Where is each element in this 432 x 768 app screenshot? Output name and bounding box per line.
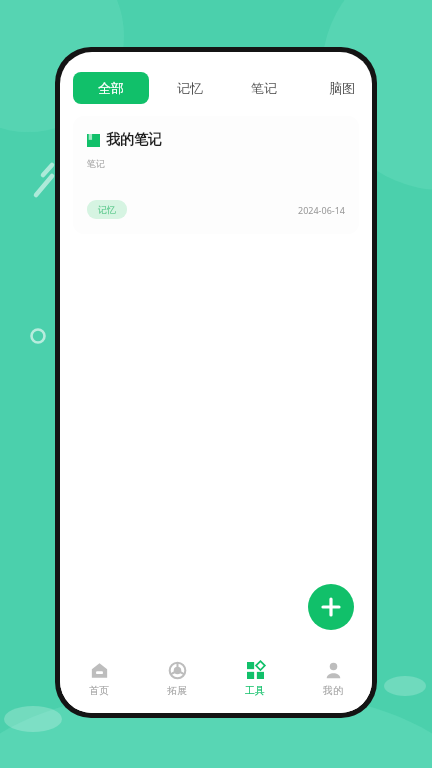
button[interactable]: 拓展 [138,647,216,713]
button[interactable]: 首页 [60,647,138,713]
staticText: 笔记 [87,158,105,169]
button[interactable]: 记忆 [87,200,127,219]
button[interactable]: 脑图 [323,72,361,104]
staticText: 拓展 [167,684,187,697]
staticText: 笔记 [251,80,277,96]
button[interactable]: Add [308,584,354,630]
staticText: 工具 [245,684,265,697]
button[interactable]: 全部 [73,72,149,104]
staticText: 全部 [98,80,124,96]
button[interactable]: 我的 [294,647,372,713]
staticText: 首页 [89,684,109,697]
staticText: 脑图 [329,80,355,96]
staticText: 2024-06-14 [298,204,345,216]
button[interactable]: 工具 [216,647,294,713]
staticText: 记忆 [177,80,203,96]
staticText: 我的笔记 [106,131,162,149]
staticText: 记忆 [98,204,116,215]
staticText: 我的 [323,684,343,697]
button[interactable]: 记忆 [171,72,209,104]
button[interactable]: 笔记 [245,72,283,104]
button[interactable]: 我的笔记 [73,116,359,234]
